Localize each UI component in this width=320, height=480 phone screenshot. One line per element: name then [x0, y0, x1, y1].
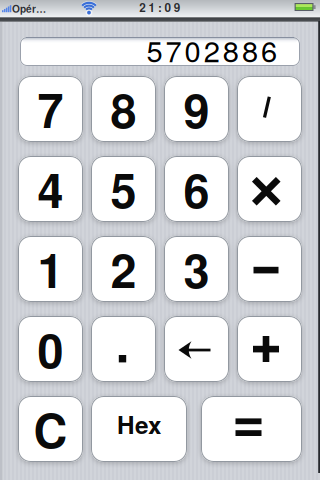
staticText: :: [158, 0, 162, 16]
staticText: 8: [223, 29, 239, 70]
staticText: 0: [37, 316, 63, 382]
button[interactable]: 3: [164, 236, 229, 302]
staticText: 7: [165, 29, 181, 70]
button[interactable]: 6: [164, 156, 229, 222]
staticText: 9: [174, 0, 181, 16]
staticText: 8: [242, 29, 258, 70]
button[interactable]: 4: [18, 156, 83, 222]
button[interactable]: 0: [18, 316, 83, 382]
staticText: 3: [183, 236, 209, 302]
staticText: Hex: [117, 407, 161, 441]
staticText: 6: [183, 156, 209, 222]
button[interactable]: Backspace: [164, 316, 229, 382]
button[interactable]: 1: [18, 236, 83, 302]
staticText: 1: [149, 0, 156, 16]
button[interactable]: Decimal point: [91, 316, 156, 382]
button[interactable]: Clear: [18, 396, 83, 462]
staticText: C: [33, 396, 67, 462]
staticText: 0: [164, 0, 171, 16]
staticText: 2: [110, 236, 136, 302]
staticText: 8: [110, 76, 136, 142]
staticText: Opér…: [12, 1, 46, 16]
button[interactable]: Add: [237, 316, 302, 382]
staticText: 7: [37, 76, 63, 142]
staticText: 5: [146, 29, 162, 70]
staticText: 9: [183, 76, 209, 142]
staticText: 2: [204, 29, 220, 70]
staticText: 0: [185, 29, 201, 70]
button[interactable]: Multiply: [237, 156, 302, 222]
staticText: 2: [139, 0, 146, 16]
staticText: 6: [261, 29, 277, 70]
button[interactable]: 7: [18, 76, 83, 142]
button[interactable]: 9: [164, 76, 229, 142]
button[interactable]: 8: [91, 76, 156, 142]
button[interactable]: Subtract: [237, 236, 302, 302]
staticText: 4: [37, 156, 63, 222]
button[interactable]: 2: [91, 236, 156, 302]
button[interactable]: Equals: [201, 396, 302, 462]
staticText: 1: [37, 236, 63, 302]
staticText: 5: [110, 156, 136, 222]
button[interactable]: Divide: [237, 76, 302, 142]
button[interactable]: 5: [91, 156, 156, 222]
button[interactable]: Hex: [91, 396, 187, 462]
